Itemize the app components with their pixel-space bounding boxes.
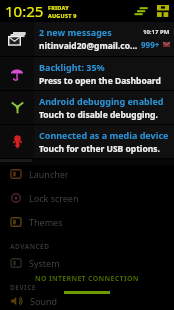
staticText: Backlight: 35% bbox=[39, 61, 105, 73]
staticText: DEVICE bbox=[10, 283, 36, 292]
staticText: nitinvaid20@gmail.com bbox=[39, 40, 138, 52]
staticText: Sound bbox=[30, 295, 58, 307]
staticText: System bbox=[29, 257, 60, 269]
button[interactable]: Lock screen bbox=[0, 186, 174, 210]
button[interactable]: Connected as a media device bbox=[0, 125, 174, 158]
staticText: 2 new messages bbox=[39, 26, 112, 38]
staticText: 10:17 PM bbox=[143, 28, 170, 36]
button[interactable]: Launcher bbox=[0, 162, 174, 186]
staticText: FRIDAY bbox=[48, 4, 69, 11]
button[interactable]: Android debugging enabled bbox=[0, 91, 174, 124]
staticText: 999+ bbox=[141, 39, 160, 50]
staticText: 10:25 bbox=[5, 1, 44, 21]
staticText: Touch for other USB options. bbox=[39, 143, 160, 155]
staticText: ADVANCED bbox=[10, 242, 50, 251]
staticText: Connected as a media device bbox=[39, 129, 169, 141]
staticText: NO INTERNET CONNECTION bbox=[35, 274, 139, 284]
staticText: Themes bbox=[29, 216, 63, 228]
staticText: Launcher bbox=[29, 168, 69, 180]
button[interactable]: 2 new messages bbox=[0, 22, 174, 56]
button[interactable]: System bbox=[0, 251, 174, 275]
button[interactable]: Sound bbox=[0, 292, 174, 310]
staticText: Lock screen bbox=[29, 192, 79, 204]
staticText: Android debugging enabled bbox=[39, 95, 164, 107]
staticText: Press to open the Dashboard bbox=[39, 75, 161, 87]
button[interactable]: Themes bbox=[0, 210, 174, 234]
button[interactable]: Backlight: 35% bbox=[0, 57, 174, 90]
staticText: Touch to disable debugging. bbox=[39, 109, 158, 121]
staticText: AUGUST 9 bbox=[48, 12, 77, 19]
